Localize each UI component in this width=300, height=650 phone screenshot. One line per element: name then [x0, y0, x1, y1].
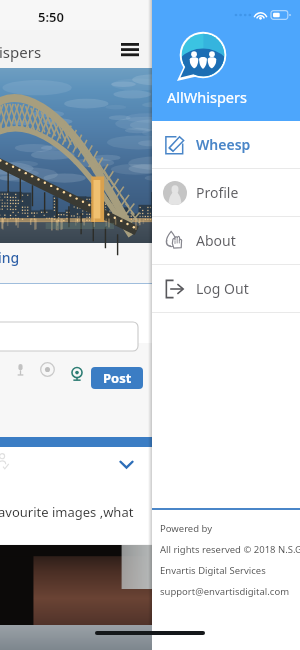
staticText: Envartis Digital Services — [160, 564, 266, 577]
staticText: Wheesp — [196, 135, 251, 154]
button[interactable]: Profile — [152, 169, 300, 216]
button[interactable]: Expand — [119, 459, 134, 470]
staticText: ispers — [0, 42, 42, 62]
staticText: AllWhispers — [167, 87, 247, 107]
staticText: About — [196, 231, 236, 250]
staticText: Log Out — [196, 279, 249, 298]
staticText: avourite images ,what so — [0, 503, 150, 521]
button[interactable]: Wheesp — [152, 121, 300, 168]
staticText: Post — [103, 369, 132, 387]
staticText: Profile — [196, 183, 239, 202]
button[interactable]: Post — [91, 367, 143, 389]
button[interactable]: About — [152, 217, 300, 264]
staticText: All rights reserved © 2018 N.S.G — [160, 543, 300, 556]
button[interactable]: Menu — [121, 43, 139, 57]
button[interactable]: Log Out — [152, 265, 300, 312]
staticText: 5:50 — [38, 8, 64, 26]
staticText: ing — [0, 248, 20, 267]
staticText: Powered by — [160, 522, 213, 535]
staticText: support@envartisdigital.com — [160, 585, 290, 598]
